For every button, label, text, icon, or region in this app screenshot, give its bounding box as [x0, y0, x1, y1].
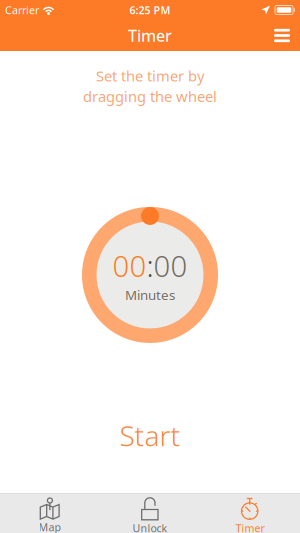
staticText: Start: [119, 417, 180, 454]
staticText: Minutes: [125, 286, 175, 304]
button[interactable]: Menu: [266, 20, 298, 51]
staticText: Timer: [235, 521, 264, 533]
staticText: 00: [112, 246, 146, 285]
button[interactable]: Unlock: [100, 493, 200, 533]
button[interactable]: Map: [0, 493, 100, 533]
staticText: Map: [38, 520, 61, 533]
staticText: 00: [153, 246, 187, 285]
staticText: Carrier: [5, 3, 39, 17]
staticText: Timer: [128, 25, 172, 46]
button[interactable]: Start: [0, 411, 300, 460]
staticText: 6:25 PM: [129, 3, 170, 17]
staticText: :: [146, 246, 153, 285]
button[interactable]: Timer: [200, 493, 300, 533]
staticText: Unlock: [132, 521, 167, 533]
staticText: dragging the wheel: [83, 86, 217, 106]
staticText: Set the timer by: [96, 66, 204, 85]
